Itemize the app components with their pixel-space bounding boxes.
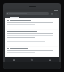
button[interactable]: Profile xyxy=(41,57,59,62)
button[interactable] xyxy=(6,30,58,46)
button[interactable] xyxy=(6,47,58,56)
button[interactable]: Filter xyxy=(50,12,53,15)
button[interactable]: Tab one xyxy=(5,16,23,18)
button[interactable] xyxy=(6,19,58,29)
button[interactable]: Search xyxy=(23,57,41,62)
button[interactable]: More options xyxy=(54,12,57,15)
button[interactable]: Home xyxy=(5,57,23,62)
button[interactable]: Search xyxy=(6,12,49,15)
